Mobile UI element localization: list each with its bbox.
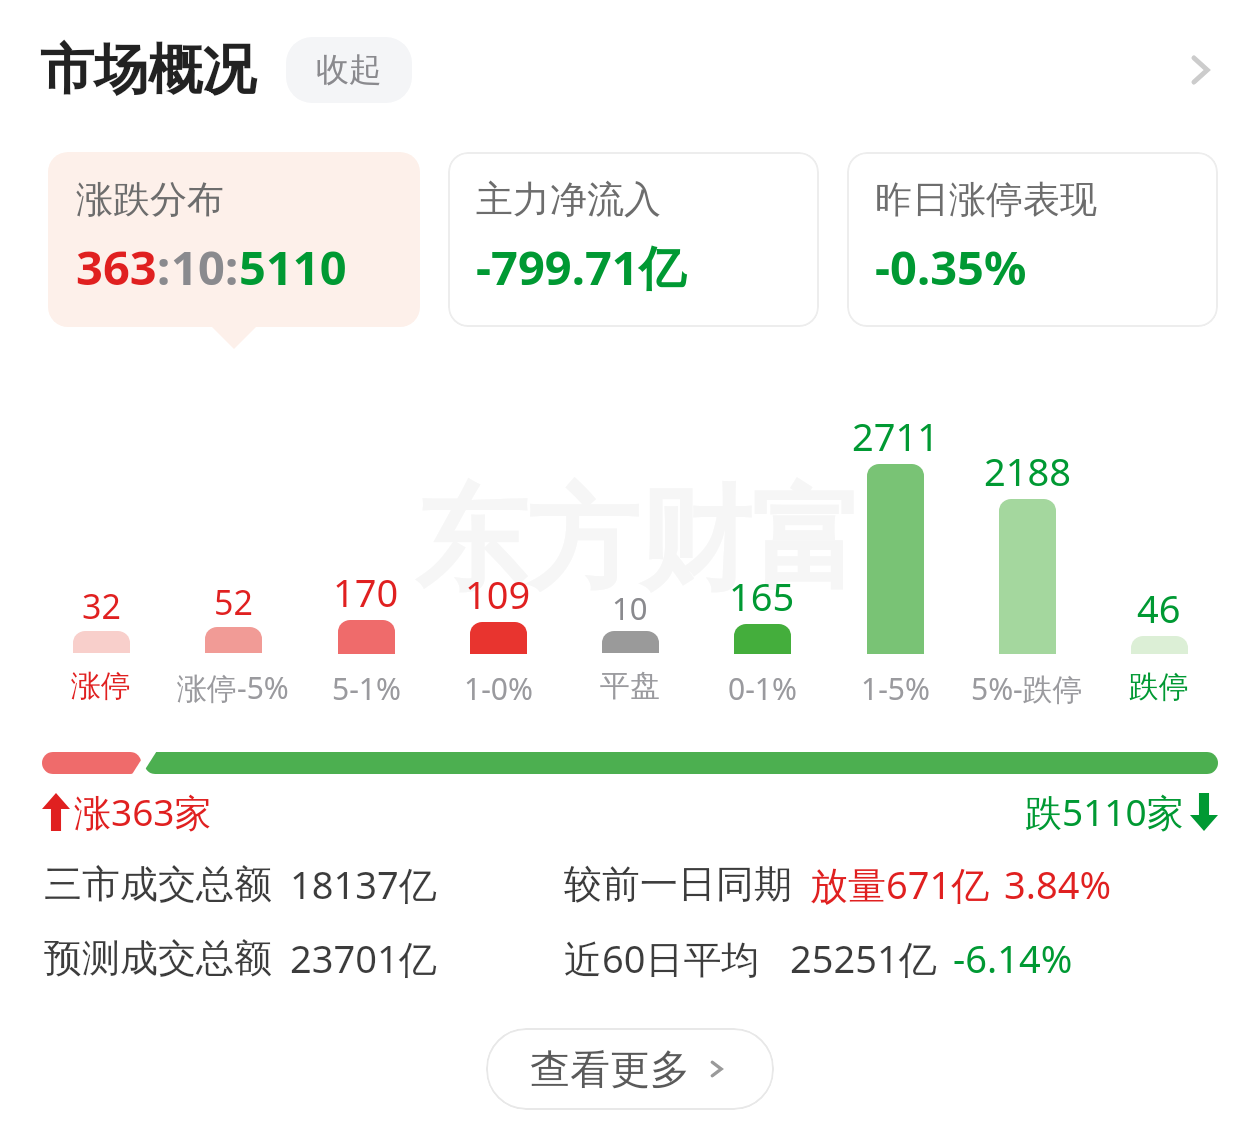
staticText: 收起 (316, 49, 382, 91)
button[interactable]: 涨跌分布 (48, 152, 420, 327)
button[interactable]: 10 (567, 380, 693, 705)
staticText: 跌停 (1129, 668, 1189, 706)
staticText: 2188 (984, 445, 1071, 497)
staticText: : (225, 235, 239, 299)
staticText: 5-1% (332, 668, 401, 709)
staticText: 市场概况 (40, 36, 256, 104)
staticText: 涨363家 (74, 786, 212, 837)
staticText: 1-0% (464, 668, 533, 709)
button[interactable]: 收起 (286, 37, 412, 103)
staticText: 涨停-5% (177, 667, 289, 708)
staticText: 涨停 (71, 667, 131, 705)
staticText: 东方财富 (415, 470, 863, 611)
staticText: 32 (82, 583, 121, 629)
button[interactable]: 2711 (832, 380, 958, 709)
staticText: 170 (333, 566, 399, 618)
button[interactable]: 52 (170, 380, 296, 708)
staticText: -0.35% (875, 235, 1027, 299)
button[interactable]: 查看更多 (486, 1028, 774, 1110)
staticText: -6.14% (953, 932, 1073, 984)
staticText: 预测成交总额 (44, 934, 272, 982)
staticText: 23701亿 (290, 932, 437, 984)
staticText: 较前一日同期 (564, 860, 792, 908)
button[interactable]: 昨日涨停表现 (847, 152, 1218, 327)
staticText: 46 (1137, 582, 1181, 634)
button[interactable]: 32 (38, 380, 164, 705)
staticText: 2711 (852, 410, 939, 462)
button[interactable]: 主力净流入 (448, 152, 819, 327)
staticText: 5110 (239, 235, 347, 299)
staticText: 10 (612, 587, 648, 629)
staticText: 三市成交总额 (44, 860, 272, 908)
staticText: 跌5110家 (1025, 786, 1184, 837)
button[interactable]: 109 (435, 380, 561, 709)
staticText: 3.84% (1004, 858, 1111, 910)
button[interactable]: 165 (699, 380, 825, 709)
staticText: 109 (465, 568, 531, 620)
staticText: 昨日涨停表现 (875, 176, 1097, 223)
staticText: 10 (171, 235, 225, 299)
staticText: 25251亿 (790, 932, 937, 984)
button[interactable]: 2188 (964, 380, 1090, 709)
staticText: 1-5% (861, 668, 930, 709)
staticText: 平盘 (600, 667, 660, 705)
button[interactable]: 更多 (1170, 40, 1230, 100)
staticText: : (157, 235, 171, 299)
staticText: 52 (214, 579, 253, 625)
staticText: 165 (729, 570, 795, 622)
staticText: 18137亿 (290, 858, 437, 910)
button[interactable]: 46 (1096, 380, 1222, 706)
staticText: 0-1% (728, 668, 797, 709)
staticText: 放量671亿 (810, 858, 990, 910)
staticText: 363 (76, 235, 157, 299)
button[interactable]: 170 (303, 380, 429, 709)
staticText: 主力净流入 (476, 176, 661, 223)
staticText: 5%-跌停 (971, 668, 1083, 709)
staticText: -799.71亿 (476, 235, 686, 299)
staticText: 涨跌分布 (76, 176, 224, 223)
staticText: 查看更多 (530, 1044, 690, 1094)
staticText: 近60日平均 (564, 932, 760, 984)
